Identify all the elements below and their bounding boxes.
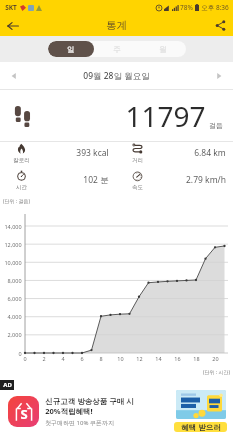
staticText: 102 분 xyxy=(83,174,109,186)
staticText: 6 xyxy=(80,355,84,362)
button[interactable]: Next day xyxy=(211,68,227,84)
button[interactable]: 월 xyxy=(140,41,186,57)
staticText: 혜택 받으러 xyxy=(181,422,221,432)
staticText: (단위 : 걸음) xyxy=(3,198,30,205)
staticText: 통계 xyxy=(106,19,127,32)
staticText: 14 xyxy=(155,355,162,362)
staticText: 첫구매하면 10% 쿠폰까지 xyxy=(45,419,114,427)
button[interactable]: Previous day xyxy=(6,68,22,84)
staticText: 신규고객 방송상품 구매 시 xyxy=(45,396,134,406)
staticText: 20 xyxy=(212,355,219,362)
staticText: 10,000 xyxy=(4,259,22,266)
button[interactable]: S xyxy=(0,378,233,437)
staticText: SKT xyxy=(5,3,17,12)
staticText: 20%적립혜택! xyxy=(45,406,93,416)
staticText: 6,000 xyxy=(7,295,22,302)
staticText: 칼로리 xyxy=(13,157,30,164)
button[interactable]: 일 xyxy=(48,41,94,57)
button[interactable]: Share xyxy=(207,15,233,36)
staticText: 2.79 km/h xyxy=(186,174,226,186)
staticText: 8 xyxy=(99,355,103,362)
staticText: 393 kcal xyxy=(76,147,109,159)
button[interactable]: Back xyxy=(0,15,26,36)
staticText: 8,000 xyxy=(7,277,22,284)
staticText: 12 xyxy=(136,355,143,362)
staticText: 12,000 xyxy=(4,241,22,248)
staticText: 11797 xyxy=(125,97,206,135)
button[interactable]: 혜택 받으러 xyxy=(174,422,227,432)
staticText: 0 xyxy=(23,355,27,362)
staticText: 오후 8:36 xyxy=(201,3,229,12)
staticText: 10 xyxy=(117,355,124,362)
staticText: 09월 28일 월요일 xyxy=(83,70,150,82)
staticText: 78% xyxy=(180,3,193,12)
staticText: 속도 xyxy=(132,184,143,191)
staticText: 14,000 xyxy=(4,223,22,230)
staticText: AD xyxy=(3,381,12,389)
staticText: 18 xyxy=(193,355,200,362)
staticText: S xyxy=(20,405,28,423)
staticText: 주 xyxy=(113,45,121,54)
button[interactable]: 주 xyxy=(94,41,140,57)
staticText: 2,000 xyxy=(7,331,22,338)
staticText: 4 xyxy=(61,355,65,362)
staticText: 4,000 xyxy=(7,313,22,320)
staticText: 6.84 km xyxy=(194,147,226,159)
staticText: 일 xyxy=(67,45,75,54)
staticText: 거리 xyxy=(132,157,143,164)
staticText: (단위 : 시간) xyxy=(203,369,230,376)
staticText: 2 xyxy=(42,355,46,362)
staticText: 걸음 xyxy=(209,121,223,130)
staticText: 16 xyxy=(174,355,181,362)
staticText: 0 xyxy=(18,350,22,357)
staticText: 월 xyxy=(159,45,167,54)
staticText: 시간 xyxy=(16,184,27,191)
